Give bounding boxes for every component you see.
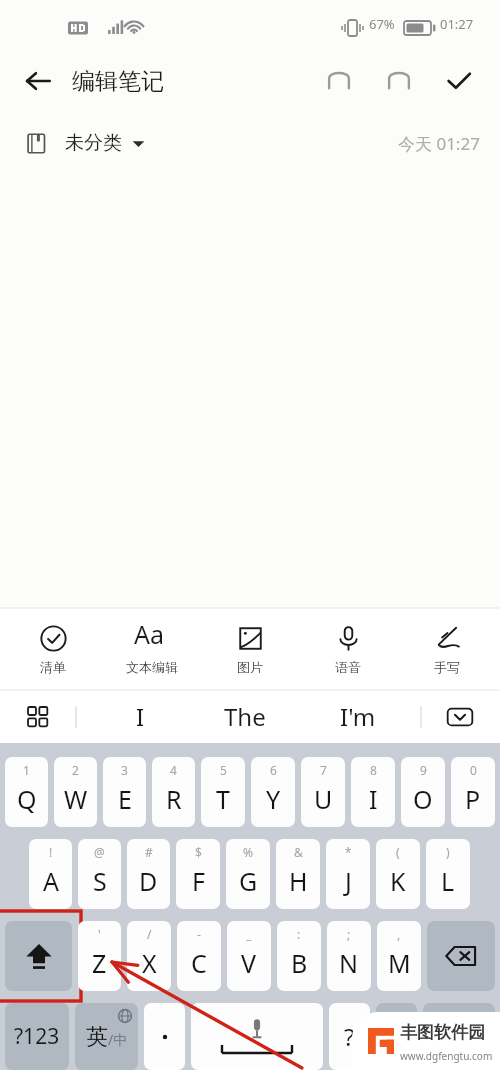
button[interactable]: ;	[327, 921, 371, 991]
staticText: K	[390, 864, 406, 898]
staticText: 换行	[440, 1025, 478, 1049]
staticText: 手写	[434, 659, 460, 675]
staticText: 01:27	[440, 15, 474, 33]
staticText: 未分类	[65, 131, 122, 155]
button[interactable]: 0	[451, 757, 495, 827]
staticText: www.dgfengtu.com	[400, 1049, 493, 1063]
button[interactable]: Hide keyboard	[436, 693, 484, 741]
staticText: _	[246, 926, 252, 942]
button[interactable]: :	[277, 921, 321, 991]
button[interactable]: 手写	[402, 610, 492, 690]
button[interactable]: Undo	[316, 58, 362, 104]
button[interactable]: .	[144, 1003, 185, 1070]
staticText: -	[197, 926, 201, 942]
button[interactable]: *	[326, 839, 370, 909]
staticText: N	[339, 946, 359, 980]
staticText: 5	[220, 762, 227, 778]
button[interactable]: 2	[54, 757, 97, 827]
button[interactable]: I	[110, 690, 170, 743]
button[interactable]: ?	[329, 1003, 370, 1070]
staticText: 0	[470, 762, 477, 778]
staticText: 图片	[237, 659, 263, 675]
staticText: 文本编辑	[126, 659, 178, 675]
button[interactable]: Emoji	[376, 1003, 417, 1070]
button[interactable]: 3	[103, 757, 146, 827]
staticText: Q	[17, 782, 37, 816]
button[interactable]: Shift	[5, 921, 72, 991]
button[interactable]: /	[127, 921, 171, 991]
button[interactable]: 4	[152, 757, 195, 827]
staticText: &	[294, 844, 303, 860]
button[interactable]: Back	[14, 57, 62, 105]
staticText: )	[446, 844, 450, 860]
button[interactable]: @	[78, 839, 121, 909]
button[interactable]: %	[226, 839, 270, 909]
staticText: 4	[170, 762, 177, 778]
staticText: 清单	[40, 659, 66, 675]
button[interactable]: 未分类	[22, 127, 149, 159]
button[interactable]: Space	[191, 1003, 323, 1070]
button[interactable]: !	[29, 839, 72, 909]
staticText: ;	[347, 926, 351, 942]
staticText: Y	[266, 782, 281, 816]
staticText: S	[93, 864, 107, 898]
staticText: P	[465, 782, 481, 816]
button[interactable]: 文本编辑	[107, 610, 197, 690]
staticText: Aa	[134, 617, 165, 651]
staticText: D	[139, 864, 158, 898]
staticText: 8	[370, 762, 377, 778]
button[interactable]: 8	[351, 757, 395, 827]
button[interactable]: )	[426, 839, 470, 909]
staticText: T	[216, 782, 230, 816]
button[interactable]: 9	[401, 757, 445, 827]
staticText: ?123	[14, 1022, 60, 1051]
button[interactable]: 6	[251, 757, 295, 827]
button[interactable]: _	[227, 921, 271, 991]
staticText: R	[166, 782, 182, 816]
button[interactable]: 图片	[205, 610, 295, 690]
button[interactable]: 英	[75, 1003, 138, 1070]
button[interactable]: 清单	[8, 610, 98, 690]
staticText: I	[369, 782, 378, 816]
button[interactable]: Backspace	[427, 921, 495, 991]
button[interactable]: #	[127, 839, 170, 909]
staticText: 语音	[335, 659, 361, 675]
staticText: W	[64, 782, 88, 816]
button[interactable]: Redo	[376, 58, 422, 104]
staticText: /	[147, 926, 152, 942]
button[interactable]: Done	[436, 58, 482, 104]
button[interactable]: Keyboard menu	[14, 693, 62, 741]
button[interactable]: 语音	[303, 610, 393, 690]
staticText: B	[291, 946, 308, 980]
button[interactable]: $	[176, 839, 220, 909]
button[interactable]: -	[177, 921, 221, 991]
staticText: /中	[108, 1030, 128, 1049]
staticText: O	[413, 782, 433, 816]
staticText: G	[239, 864, 258, 898]
staticText: 6	[270, 762, 277, 778]
staticText: L	[441, 864, 455, 898]
button[interactable]: 1	[5, 757, 48, 827]
button[interactable]: 7	[301, 757, 345, 827]
button[interactable]: 5	[201, 757, 245, 827]
staticText: ?	[344, 1020, 355, 1053]
staticText: A	[43, 864, 59, 898]
staticText: 丰图软件园	[400, 1022, 485, 1043]
staticText: @	[94, 844, 105, 860]
button[interactable]: &	[276, 839, 320, 909]
button[interactable]: (	[376, 839, 420, 909]
staticText: !	[49, 844, 53, 860]
button[interactable]: The	[200, 690, 290, 743]
staticText: C	[191, 946, 207, 980]
staticText: I	[136, 700, 145, 733]
staticText: 67%	[369, 15, 395, 33]
staticText: X	[142, 946, 157, 980]
button[interactable]: Enter	[423, 1003, 495, 1070]
staticText: *	[345, 844, 352, 860]
button[interactable]: I'm	[318, 690, 398, 743]
staticText: The	[224, 700, 266, 733]
staticText: $	[195, 844, 202, 860]
button[interactable]: Symbols	[5, 1003, 69, 1070]
button[interactable]: '	[78, 921, 121, 991]
button[interactable]: ,	[377, 921, 421, 991]
